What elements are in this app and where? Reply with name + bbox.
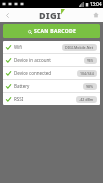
staticText: 98% — [86, 84, 94, 89]
staticText: -42 dBm — [79, 97, 94, 102]
staticText: YES — [87, 58, 94, 63]
button[interactable]: Wifi — [3, 41, 100, 53]
staticText: 13:04 — [90, 1, 102, 7]
staticText: 104/344 — [80, 71, 94, 76]
staticText: DIGI — [39, 9, 61, 21]
staticText: RSSI — [14, 96, 24, 102]
button[interactable]: SCAN BARCODE — [3, 24, 100, 38]
staticText: Wifi — [14, 44, 23, 50]
staticText: Battery — [14, 83, 30, 89]
button[interactable]: Home — [89, 8, 103, 22]
button[interactable]: Battery — [3, 80, 100, 92]
button[interactable]: RSSI — [3, 93, 100, 105]
button[interactable]: Device connected — [3, 67, 100, 79]
button[interactable]: Device in account — [3, 54, 100, 66]
staticText: Device in account — [14, 57, 51, 63]
staticText: DIGI-Mobile-Net — [65, 45, 94, 50]
staticText: SCAN BARCODE — [34, 28, 76, 35]
staticText: Device connected — [14, 70, 52, 76]
button[interactable]: Back — [0, 8, 14, 22]
